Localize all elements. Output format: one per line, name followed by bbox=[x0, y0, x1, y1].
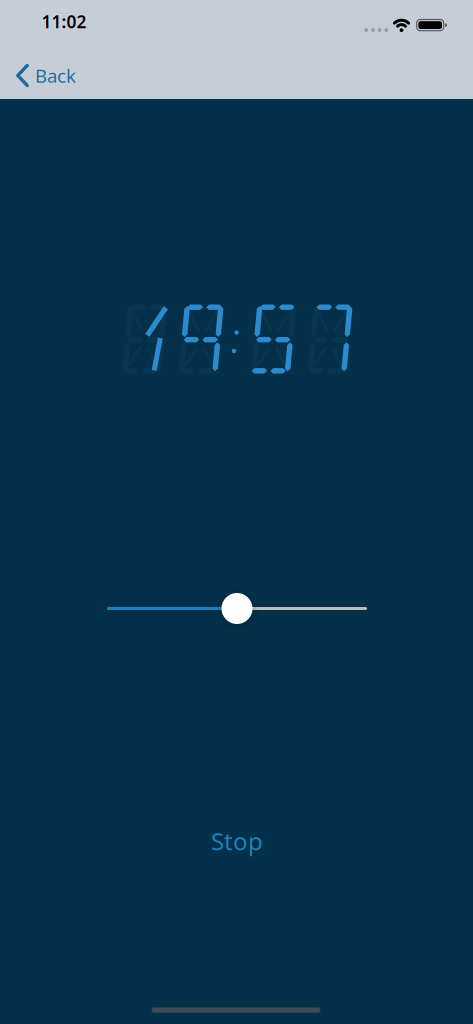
button[interactable]: Slider bbox=[99, 586, 375, 630]
button[interactable]: Stop bbox=[203, 817, 271, 865]
staticText: 11:02 bbox=[41, 10, 86, 33]
button[interactable]: Back bbox=[16, 63, 76, 88]
staticText: Stop bbox=[211, 825, 263, 857]
staticText: Back bbox=[35, 63, 76, 88]
